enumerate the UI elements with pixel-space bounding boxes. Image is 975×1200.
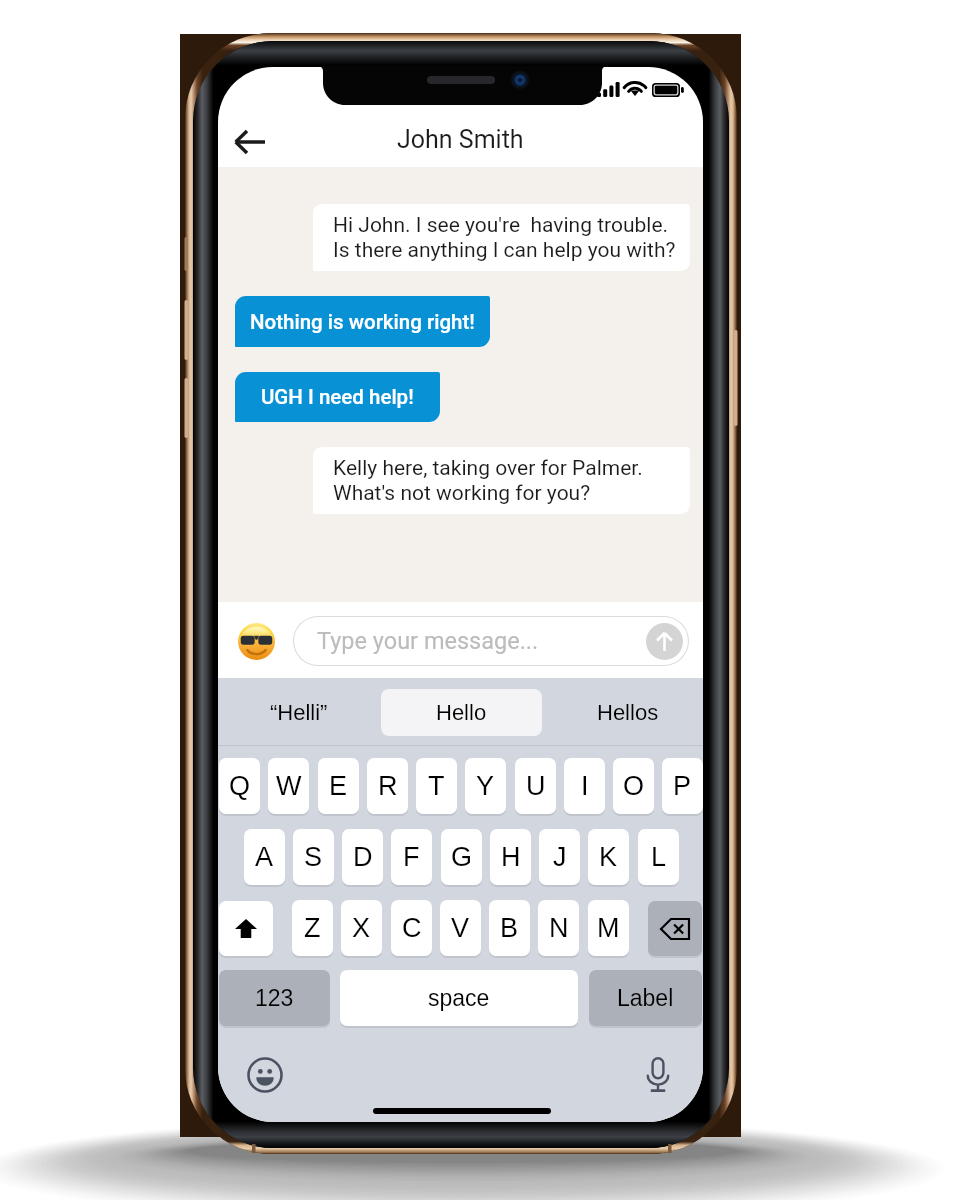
staticText: D xyxy=(353,842,373,872)
button[interactable]: L xyxy=(638,829,679,885)
staticText: Hellos xyxy=(597,700,659,725)
button[interactable]: D xyxy=(342,829,383,885)
staticText: Q xyxy=(229,771,251,801)
staticText: G xyxy=(451,842,473,872)
staticText: K xyxy=(599,842,618,872)
staticText: I xyxy=(581,771,589,801)
button[interactable]: Emoji keyboard xyxy=(247,1057,283,1093)
button[interactable]: Y xyxy=(465,758,506,814)
staticText: O xyxy=(623,771,645,801)
button[interactable]: N xyxy=(538,900,579,956)
button[interactable]: Dictation xyxy=(643,1055,673,1095)
button[interactable]: P xyxy=(662,758,703,814)
button[interactable]: O xyxy=(613,758,654,814)
button[interactable]: I xyxy=(564,758,605,814)
button[interactable]: K xyxy=(588,829,629,885)
staticText: M xyxy=(597,913,620,943)
staticText: Nothing is working right! xyxy=(250,310,475,334)
staticText: R xyxy=(378,771,398,801)
staticText: UGH I need help! xyxy=(261,385,414,409)
staticText: Y xyxy=(476,771,495,801)
staticText: What's not working for you? xyxy=(333,481,591,506)
button[interactable]: Z xyxy=(292,900,333,956)
button[interactable]: C xyxy=(391,900,432,956)
staticText: Hi John. I see you're having trouble. xyxy=(333,213,669,238)
staticText: A xyxy=(255,842,274,872)
button[interactable]: S xyxy=(293,829,334,885)
button[interactable]: B xyxy=(489,900,530,956)
button[interactable]: Kelly here, taking over for Palmer. xyxy=(313,447,690,514)
button[interactable]: Label xyxy=(589,970,702,1026)
staticText: Is there anything I can help you with? xyxy=(333,238,676,263)
staticText: 123 xyxy=(255,985,294,1011)
staticText: John Smith xyxy=(397,125,524,154)
button[interactable]: space xyxy=(340,970,578,1026)
button[interactable]: T xyxy=(416,758,457,814)
button[interactable]: Nothing is working right! xyxy=(235,296,490,347)
staticText: Z xyxy=(304,913,321,943)
staticText: Hello xyxy=(436,700,487,725)
button[interactable]: W xyxy=(268,758,309,814)
button[interactable]: H xyxy=(490,829,531,885)
button[interactable]: F xyxy=(391,829,432,885)
staticText: L xyxy=(651,842,667,872)
button[interactable]: 123 xyxy=(219,970,330,1026)
staticText: B xyxy=(500,913,519,943)
button[interactable]: V xyxy=(440,900,481,956)
staticText: U xyxy=(526,771,546,801)
button[interactable]: UGH I need help! xyxy=(235,372,440,422)
staticText: S xyxy=(304,842,323,872)
button[interactable]: Send xyxy=(646,623,683,660)
button[interactable]: Back xyxy=(222,117,278,167)
button[interactable]: G xyxy=(441,829,482,885)
staticText: space xyxy=(428,985,490,1011)
staticText: P xyxy=(673,771,692,801)
staticText: E xyxy=(329,771,348,801)
button[interactable]: Backspace xyxy=(648,901,702,956)
staticText: Kelly here, taking over for Palmer. xyxy=(333,456,643,481)
button[interactable]: Type your message... xyxy=(293,616,689,666)
staticText: F xyxy=(403,842,420,872)
staticText: V xyxy=(451,913,470,943)
button[interactable]: J xyxy=(539,829,580,885)
button[interactable]: Hellos xyxy=(553,689,703,736)
staticText: “Helli” xyxy=(270,700,328,725)
button[interactable]: “Helli” xyxy=(218,689,381,736)
staticText: Type your message... xyxy=(317,627,539,655)
button[interactable]: U xyxy=(515,758,556,814)
button[interactable]: A xyxy=(244,829,285,885)
staticText: C xyxy=(402,913,422,943)
button[interactable]: X xyxy=(341,900,382,956)
button[interactable]: M xyxy=(588,900,629,956)
staticText: X xyxy=(352,913,371,943)
button[interactable]: Q xyxy=(219,758,260,814)
button[interactable]: E xyxy=(318,758,359,814)
staticText: J xyxy=(553,842,567,872)
button[interactable]: R xyxy=(367,758,408,814)
staticText: W xyxy=(276,771,302,801)
button[interactable]: Hi John. I see you're having trouble. xyxy=(313,204,690,271)
button[interactable]: Hello xyxy=(381,689,542,736)
staticText: Label xyxy=(617,985,674,1011)
button[interactable]: Shift xyxy=(219,901,273,956)
button[interactable]: Emoji picker xyxy=(238,623,275,660)
staticText: N xyxy=(549,913,569,943)
staticText: T xyxy=(428,771,445,801)
staticText: H xyxy=(501,842,521,872)
